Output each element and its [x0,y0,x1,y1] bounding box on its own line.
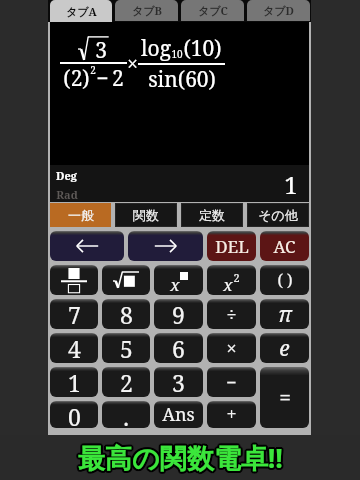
button[interactable]: 4 [50,333,98,363]
button[interactable]: Square root [102,265,150,295]
button[interactable]: 2 [102,367,150,397]
staticText: 最高の関数電卓!! [78,437,283,474]
staticText: 最高の関数電卓!! [79,439,284,476]
staticText: 8 [120,299,133,329]
staticText: 最高の関数電卓!! [76,438,281,475]
staticText: 最高の関数電卓!! [79,437,284,474]
button[interactable]: ÷ [207,299,256,329]
staticText: 最高の関数電卓!! [79,438,284,475]
staticText: 最高の関数電卓!! [77,438,282,475]
button[interactable]: Square [207,265,256,295]
button[interactable]: − [207,367,256,397]
staticText: x [170,273,180,295]
staticText: 最高の関数電卓!! [80,438,285,475]
button[interactable]: Fraction [50,265,98,295]
staticText: ( ) [277,269,293,291]
staticText: 一般 [68,207,94,223]
button[interactable]: 定数 [182,204,242,226]
staticText: 2 [120,367,133,397]
staticText: 3 [95,36,107,63]
staticText: 1 [284,168,298,201]
staticText: 6 [172,333,185,363]
staticText: e [279,334,290,363]
button[interactable]: DEL [207,231,256,261]
button[interactable]: + [207,401,256,428]
staticText: 3 [172,367,185,397]
button[interactable]: × [207,333,256,363]
button[interactable]: Ans [154,401,203,428]
staticText: 2 [90,63,96,77]
staticText: 最高の関数電卓!! [77,439,282,476]
button[interactable]: 7 [50,299,98,329]
staticText: 最高の関数電卓!! [76,439,281,476]
staticText: − 2 [96,64,124,93]
staticText: 1 [68,367,81,397]
staticText: 最高の関数電卓!! [77,437,282,474]
staticText: + [226,402,237,427]
staticText: タブD [263,3,294,18]
staticText: 2 [233,270,240,285]
staticText: 最高の関数電卓!! [77,441,282,478]
staticText: タブA [66,4,97,19]
staticText: . [123,401,129,428]
staticText: × [226,336,237,361]
staticText: 最高の関数電卓!! [79,440,284,477]
button[interactable]: 最高の関数電卓!! [0,435,360,480]
button[interactable]: Move right [128,231,203,261]
button[interactable]: タブD [247,0,310,21]
staticText: 最高の関数電卓!! [79,441,284,478]
button[interactable]: = [260,367,309,428]
button[interactable]: π [260,299,309,329]
button[interactable]: タブB [115,0,178,21]
staticText: 最高の関数電卓!! [78,441,283,478]
button[interactable]: e [260,333,309,363]
staticText: log [141,34,171,63]
staticText: タブB [132,3,162,18]
staticText: Rad [56,187,78,202]
staticText: その他 [258,207,298,223]
button[interactable]: 6 [154,333,203,363]
staticText: 最高の関数電卓!! [80,439,285,476]
staticText: 最高の関数電卓!! [76,440,281,477]
button[interactable]: Move left [50,231,124,261]
staticText: 4 [68,333,81,363]
staticText: Deg [56,168,77,183]
button[interactable]: 関数 [116,204,176,226]
button[interactable]: 3 [154,367,203,397]
button[interactable]: タブC [181,0,244,21]
button[interactable]: Power [154,265,203,295]
staticText: 10 [171,47,183,61]
staticText: 定数 [199,207,225,223]
button[interactable]: その他 [248,204,308,226]
staticText: 最高の関数電卓!! [78,438,283,475]
button[interactable]: 8 [102,299,150,329]
button[interactable]: 0 [50,401,98,428]
button[interactable]: タブA [50,0,112,22]
button[interactable]: 一般 [51,204,110,226]
staticText: 最高の関数電卓!! [78,439,283,476]
staticText: (2) [63,64,90,93]
staticText: − [226,370,237,395]
button[interactable]: 1 [50,367,98,397]
staticText: ÷ [226,302,237,327]
staticText: = [279,383,291,412]
staticText: 最高の関数電卓!! [77,440,282,477]
staticText: 7 [68,299,81,329]
staticText: x [223,273,233,295]
staticText: (10) [183,34,222,63]
staticText: 5 [120,333,133,363]
button[interactable]: 9 [154,299,203,329]
staticText: Ans [162,402,195,427]
staticText: sin(60) [148,65,216,94]
staticText: DEL [215,235,249,258]
staticText: π [278,300,292,329]
staticText: AC [273,235,296,258]
button[interactable]: 5 [102,333,150,363]
staticText: 最高の関数電卓!! [80,440,285,477]
button[interactable]: . [102,401,150,428]
staticText: 最高の関数電卓!! [78,440,283,477]
staticText: × [127,51,138,77]
button[interactable]: AC [260,231,309,261]
button[interactable]: ( ) [260,265,309,295]
staticText: タブC [198,3,228,18]
